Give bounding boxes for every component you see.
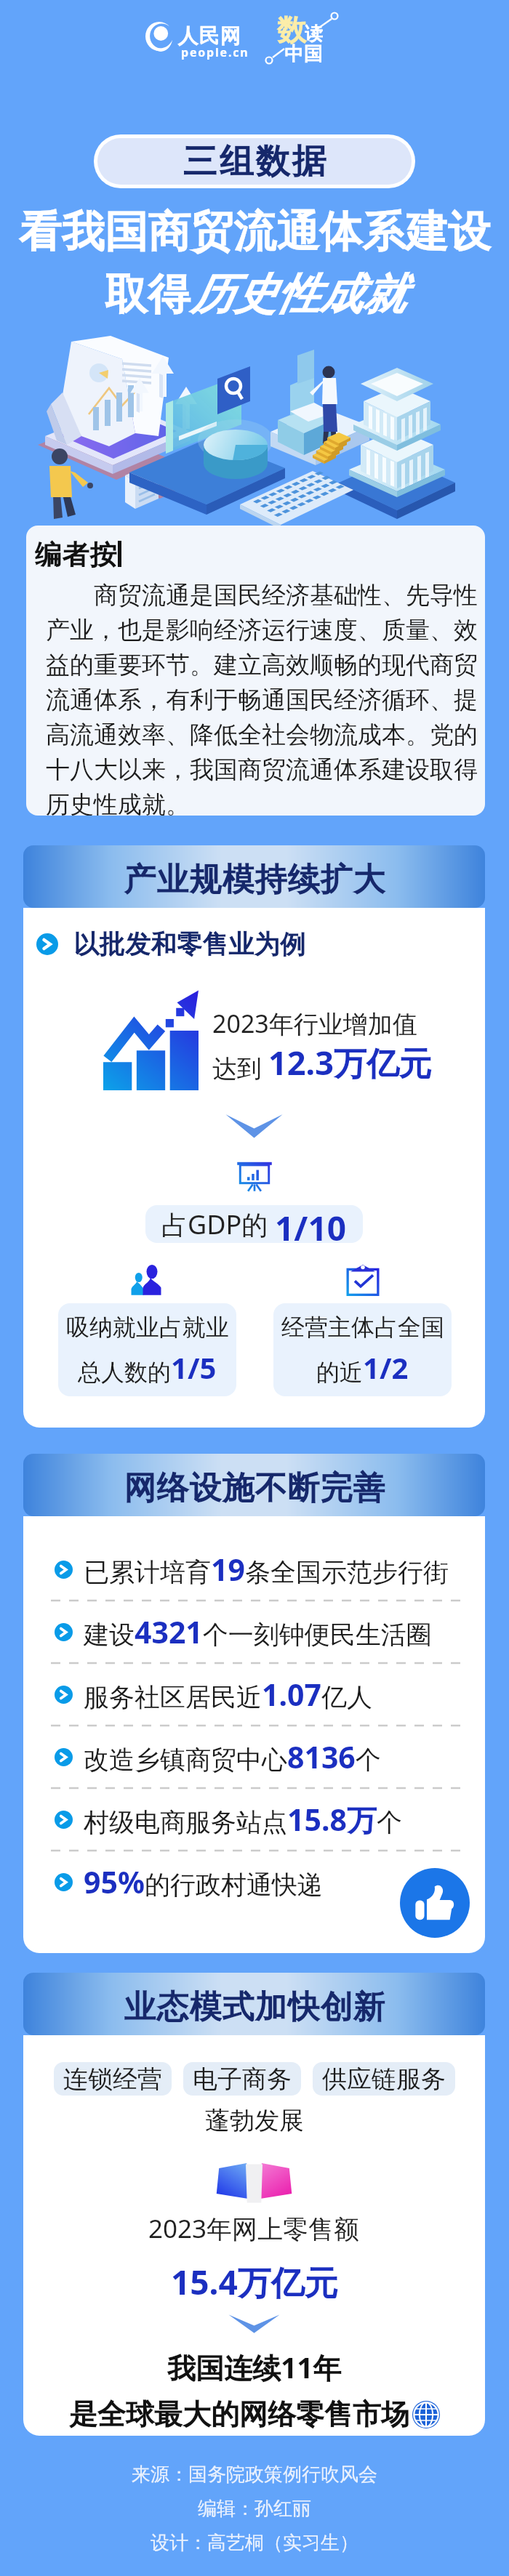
- staticText: 2023年行业增加值: [212, 1007, 417, 1040]
- staticText: 1/2: [363, 1348, 409, 1387]
- staticText: 读: [305, 23, 323, 45]
- staticText: 15.4万亿元: [171, 2259, 338, 2305]
- staticText: 产业规模持续扩大: [124, 860, 385, 900]
- staticText: 编者按: [34, 538, 117, 572]
- staticText: 达到: [212, 1051, 268, 1084]
- staticText: 的近: [316, 1358, 363, 1387]
- staticText: 已累计培育19条全国示范步行街: [84, 1549, 449, 1590]
- staticText: 是全球最大的网络零售市场: [69, 2396, 409, 2432]
- button[interactable]: 建设4321个一刻钟便民生活圈: [55, 1601, 485, 1662]
- staticText: 历史性成就: [191, 267, 405, 321]
- staticText: 总人数的: [78, 1358, 171, 1387]
- button[interactable]: 95%的行政村通快递: [55, 1851, 485, 1912]
- button[interactable]: 已累计培育19条全国示范步行街: [55, 1539, 485, 1600]
- staticText: 吸纳就业占就业: [66, 1313, 229, 1342]
- button[interactable]: 村级电商服务站点15.8万个: [55, 1789, 485, 1850]
- staticText: 供应链服务: [322, 2064, 446, 2095]
- staticText: 商贸流通是国民经济基础性、先导性产业，也是影响经济运行速度、质量、效益的重要环节…: [46, 578, 482, 816]
- staticText: 看我国商贸流通体系建设: [19, 205, 491, 259]
- staticText: 蓬勃发展: [205, 2105, 304, 2136]
- staticText: 建设4321个一刻钟便民生活圈: [84, 1611, 432, 1652]
- button[interactable]: Like: [400, 1868, 470, 1938]
- button[interactable]: 连锁经营: [54, 2062, 172, 2096]
- staticText: 服务社区居民近1.07亿人: [84, 1674, 372, 1715]
- button[interactable]: 改造乡镇商贸中心8136个: [55, 1726, 485, 1787]
- staticText: 1/5: [171, 1348, 217, 1387]
- button[interactable]: 供应链服务: [313, 2062, 455, 2096]
- staticText: 来源：国务院政策例行吹风会: [132, 2463, 377, 2487]
- staticText: 经营主体占全国: [281, 1313, 444, 1342]
- staticText: 95%的行政村通快递: [84, 1861, 323, 1902]
- staticText: 三组数据: [182, 140, 327, 183]
- button[interactable]: 以批发和零售业为例: [36, 928, 306, 960]
- staticText: 中国: [284, 42, 323, 66]
- button[interactable]: 服务社区居民近1.07亿人: [55, 1664, 485, 1725]
- staticText: 12.3万亿元: [268, 1040, 432, 1084]
- staticText: 连锁经营: [63, 2064, 162, 2095]
- staticText: 网络设施不断完善: [124, 1468, 385, 1508]
- staticText: people.cn: [181, 44, 249, 60]
- staticText: 数: [277, 12, 306, 48]
- staticText: 村级电商服务站点15.8万个: [84, 1799, 402, 1840]
- staticText: 人民网: [177, 23, 241, 49]
- staticText: 2023年网上零售额: [148, 2211, 360, 2246]
- staticText: 设计：高艺桐（实习生）: [151, 2531, 358, 2555]
- staticText: 1/10: [275, 1205, 347, 1243]
- staticText: 电子商务: [193, 2064, 292, 2095]
- staticText: 占GDP的: [161, 1207, 275, 1242]
- staticText: 改造乡镇商贸中心8136个: [84, 1736, 381, 1777]
- staticText: 编辑：孙红丽: [198, 2497, 311, 2521]
- button[interactable]: 电子商务: [183, 2062, 301, 2096]
- staticText: 取得: [105, 267, 191, 321]
- staticText: 我国连续11年: [167, 2348, 342, 2386]
- staticText: 以批发和零售业为例: [73, 928, 306, 960]
- staticText: 业态模式加快创新: [124, 1987, 385, 2027]
